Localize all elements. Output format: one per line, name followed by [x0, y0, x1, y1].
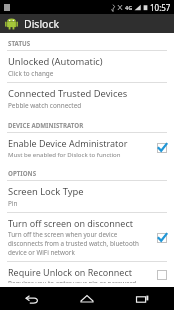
staticText: Requires you to enter your pin or passwo…: [8, 279, 150, 283]
button[interactable]: Home: [64, 287, 110, 310]
staticText: Must be enabled for Dislock to function: [8, 150, 121, 158]
staticText: Turn off screen on disconnect: [8, 217, 133, 229]
button[interactable]: Enabled toggle: [155, 231, 168, 244]
staticText: Unlocked (Automatic): [8, 55, 103, 68]
button[interactable]: Enable Device Administrator: [0, 133, 174, 162]
staticText: Turn off the screen when your device dis…: [8, 230, 150, 257]
staticText: Screen Lock Type: [8, 185, 84, 198]
staticText: Dislock: [24, 17, 60, 31]
button[interactable]: Back: [9, 287, 55, 310]
button[interactable]: Connected Trusted Devices: [0, 83, 174, 114]
button[interactable]: Require Unlock on Reconnect: [0, 262, 174, 287]
staticText: Connected Trusted Devices: [8, 87, 128, 100]
staticText: 10:57: [150, 2, 171, 13]
button[interactable]: Enabled toggle: [155, 141, 168, 154]
staticText: 4G: [125, 4, 133, 12]
staticText: Require Unlock on Reconnect: [8, 266, 132, 278]
button[interactable]: Dislock: [0, 14, 174, 33]
staticText: Enable Device Administrator: [8, 137, 128, 149]
staticText: DEVICE ADMINISTRATOR: [8, 121, 84, 129]
staticText: Click to change: [8, 69, 54, 78]
button[interactable]: Disabled toggle: [155, 268, 168, 281]
staticText: Pin: [8, 199, 18, 208]
staticText: Pebble watch connected: [8, 101, 82, 110]
button[interactable]: Turn off screen on disconnect: [0, 213, 174, 261]
button[interactable]: Unlocked (Automatic): [0, 51, 174, 82]
button[interactable]: Recent apps: [119, 287, 165, 310]
staticText: OPTIONS: [8, 169, 37, 177]
button[interactable]: Screen Lock Type: [0, 181, 174, 212]
staticText: STATUS: [8, 39, 31, 47]
